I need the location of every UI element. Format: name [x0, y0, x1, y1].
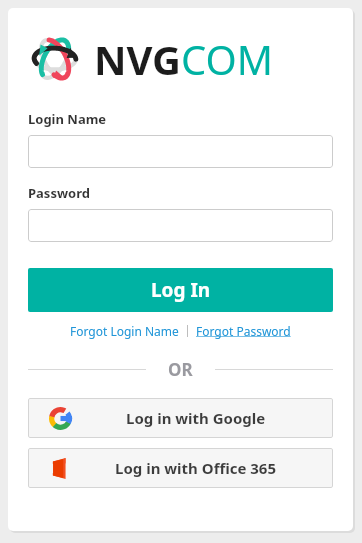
staticText: Password — [28, 184, 90, 202]
staticText: Login Name — [28, 110, 107, 128]
button[interactable] — [28, 209, 333, 242]
staticText: Log in with Google — [126, 408, 266, 428]
button[interactable] — [28, 135, 333, 168]
staticText: Log in with Office 365 — [115, 458, 277, 478]
button[interactable]: Log in with Google — [28, 398, 333, 438]
staticText: Log In — [151, 277, 211, 303]
staticText: Forgot Password — [196, 323, 291, 339]
staticText: NVGCOM — [94, 32, 274, 86]
button[interactable]: Forgot Password — [194, 323, 293, 339]
button[interactable]: Log in with Office 365 — [28, 448, 333, 488]
other: Log in with Google — [49, 407, 72, 430]
button[interactable]: Log In — [28, 268, 333, 312]
other: Log in with Office 365 — [49, 457, 72, 480]
staticText: Forgot Login Name — [70, 323, 179, 339]
button[interactable]: Forgot Login Name — [68, 323, 181, 339]
staticText: OR — [168, 358, 193, 381]
